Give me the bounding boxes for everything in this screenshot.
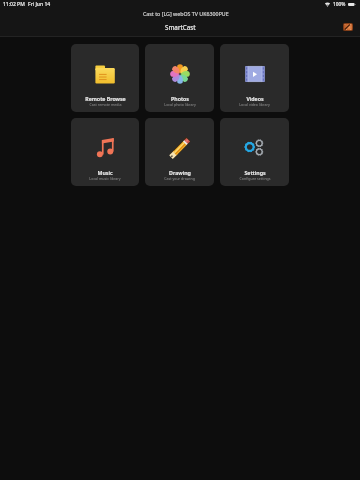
- staticText: Local photo library: [164, 102, 196, 107]
- staticText: Remote Browse: [85, 95, 126, 102]
- staticText: Cast your drawing: [164, 176, 195, 181]
- staticText: SmartCast: [165, 23, 196, 32]
- button[interactable]: Videos: [220, 44, 289, 112]
- staticText: Local music library: [89, 176, 121, 181]
- button[interactable]: Remote Browse: [71, 44, 139, 112]
- staticText: Configure settings: [239, 176, 271, 181]
- staticText: Fri Jun 14: [28, 1, 51, 8]
- staticText: Cast to [LG] webOS TV UK6300PUE: [143, 10, 229, 17]
- button[interactable]: Music: [71, 118, 139, 186]
- staticText: Cast remote media: [89, 102, 122, 107]
- button[interactable]: Photos: [145, 44, 214, 112]
- button[interactable]: Cast to device: [343, 23, 353, 31]
- button[interactable]: Settings: [220, 118, 289, 186]
- staticText: 100%: [333, 1, 346, 8]
- staticText: Settings: [244, 169, 266, 176]
- button[interactable]: Drawing: [145, 118, 214, 186]
- staticText: Music: [97, 169, 113, 176]
- staticText: Videos: [246, 95, 264, 102]
- staticText: Photos: [171, 95, 189, 102]
- staticText: Drawing: [169, 169, 191, 176]
- staticText: Local video library: [239, 102, 270, 107]
- staticText: 11:02 PM: [3, 1, 25, 8]
